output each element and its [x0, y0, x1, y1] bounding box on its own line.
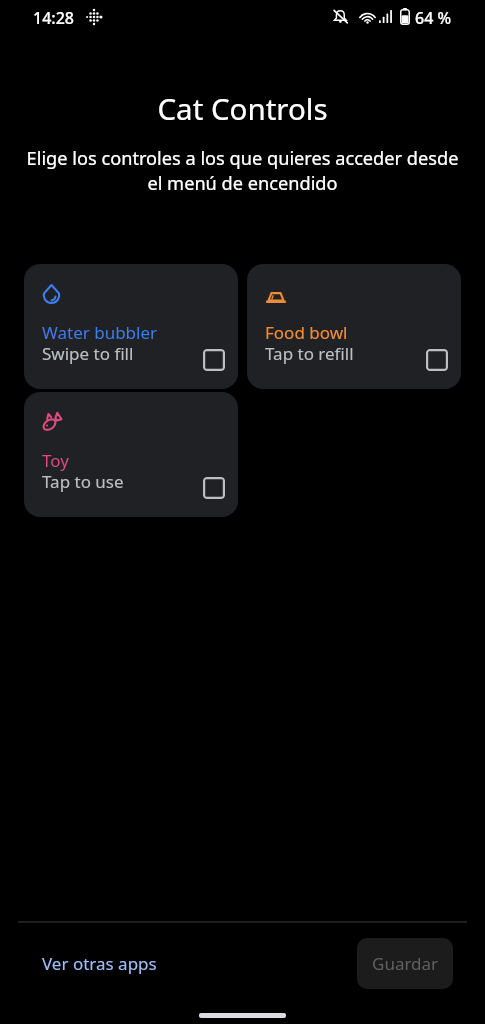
- staticText: Water bubbler: [42, 321, 158, 344]
- staticText: Elige los controles a los que quieres ac…: [20, 146, 465, 195]
- staticText: Swipe to fill: [42, 342, 134, 365]
- staticText: 64 %: [415, 7, 452, 29]
- staticText: Food bowl: [265, 321, 348, 344]
- button[interactable]: Food bowl: [247, 264, 461, 389]
- button[interactable]: Select Water bubbler: [203, 349, 225, 371]
- button[interactable]: Guardar: [357, 938, 453, 989]
- staticText: Cat Controls: [0, 88, 485, 128]
- button[interactable]: Ver otras apps: [30, 943, 169, 984]
- staticText: Ver otras apps: [42, 952, 157, 975]
- staticText: Tap to refill: [265, 342, 354, 365]
- button[interactable]: Water bubbler: [24, 264, 238, 389]
- staticText: 14:28: [33, 7, 74, 29]
- staticText: Tap to use: [42, 470, 124, 493]
- button[interactable]: Select Toy: [203, 477, 225, 499]
- staticText: Toy: [42, 449, 69, 472]
- button[interactable]: Toy: [24, 392, 238, 517]
- staticText: Guardar: [372, 952, 439, 975]
- button[interactable]: Select Food bowl: [426, 349, 448, 371]
